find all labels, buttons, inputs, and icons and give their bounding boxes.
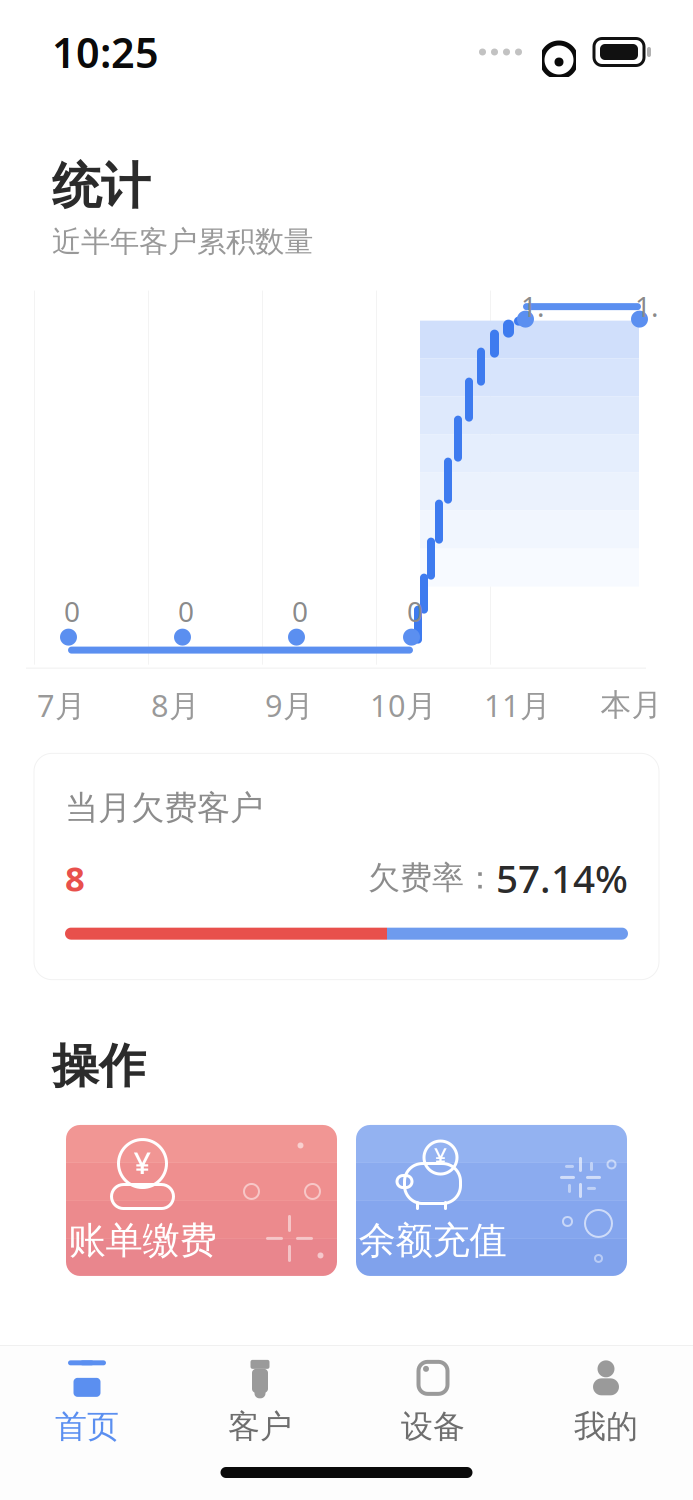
button[interactable]: 设备 [346, 1346, 519, 1458]
staticText: 账单缴费 [68, 1217, 216, 1263]
staticText: 近半年客户累积数量 [52, 224, 313, 260]
staticText: 7月 [37, 685, 86, 725]
staticText: 当月欠费客户 [65, 787, 263, 828]
button[interactable]: 我的 [519, 1346, 692, 1458]
staticText: 8月 [151, 685, 200, 725]
staticText: 9月 [265, 685, 314, 725]
staticText: 设备 [401, 1407, 465, 1446]
staticText: 11月 [484, 685, 551, 725]
staticText: 操作 [52, 1038, 146, 1095]
staticText: 余额充值 [358, 1217, 506, 1263]
staticText: ¥ [133, 1142, 151, 1183]
staticText: 10:25 [52, 25, 159, 79]
staticText: 0 [178, 593, 194, 630]
staticText: 首页 [55, 1407, 119, 1446]
button[interactable]: ¥ [66, 1125, 337, 1276]
staticText: 我的 [574, 1407, 638, 1446]
staticText: 1. [635, 288, 659, 325]
staticText: 客户 [228, 1407, 292, 1446]
staticText: 统计 [52, 156, 150, 217]
staticText: 1. [521, 288, 545, 325]
staticText: 0 [407, 593, 423, 630]
staticText: 57.14% [496, 852, 628, 904]
button[interactable]: 客户 [173, 1346, 346, 1458]
staticText: 0 [64, 593, 80, 630]
staticText: 0 [292, 593, 308, 630]
button[interactable]: 首页 [0, 1346, 173, 1458]
button[interactable]: ¥ [356, 1125, 627, 1276]
staticText: 8 [65, 855, 85, 901]
staticText: 10月 [370, 685, 437, 725]
staticText: ¥ [434, 1141, 447, 1172]
staticText: 本月 [600, 686, 662, 724]
staticText: 欠费率： [368, 858, 496, 898]
